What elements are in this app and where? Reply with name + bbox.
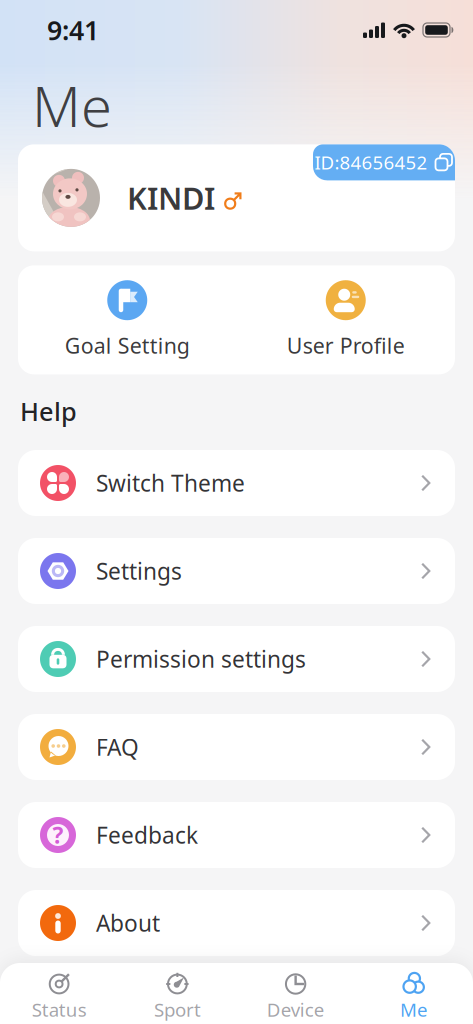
button[interactable]: Settings <box>18 538 455 604</box>
button[interactable]: Goal Setting <box>18 280 236 359</box>
button[interactable]: Copy ID <box>313 144 455 180</box>
button[interactable]: About <box>18 890 455 956</box>
button[interactable]: Status <box>0 971 118 1022</box>
staticText: Me <box>32 68 112 142</box>
staticText: Switch Theme <box>96 468 245 498</box>
staticText: ? <box>52 820 63 850</box>
button[interactable]: Me <box>355 971 473 1022</box>
button[interactable]: FAQ <box>18 714 455 780</box>
button[interactable]: Sport <box>118 971 236 1022</box>
staticText: Feedback <box>96 820 198 850</box>
staticText: Settings <box>96 556 182 586</box>
staticText: FAQ <box>96 732 139 762</box>
staticText: Help <box>20 394 77 428</box>
button[interactable]: Permission settings <box>18 626 455 692</box>
staticText: Sport <box>154 997 201 1022</box>
staticText: Device <box>267 997 325 1022</box>
staticText: KINDI <box>127 177 215 218</box>
staticText: Me <box>400 997 428 1022</box>
button[interactable]: Device <box>236 971 355 1022</box>
staticText: Goal Setting <box>65 331 190 359</box>
button[interactable]: Switch Theme <box>18 450 455 516</box>
button[interactable]: ? <box>18 802 455 868</box>
staticText: About <box>96 908 160 938</box>
staticText: User Profile <box>287 331 405 359</box>
staticText: 9:41 <box>47 12 99 48</box>
button[interactable]: User Profile <box>236 280 455 359</box>
staticText: Permission settings <box>96 644 306 674</box>
staticText: Status <box>32 997 87 1022</box>
staticText: ID:84656452 <box>314 150 427 175</box>
